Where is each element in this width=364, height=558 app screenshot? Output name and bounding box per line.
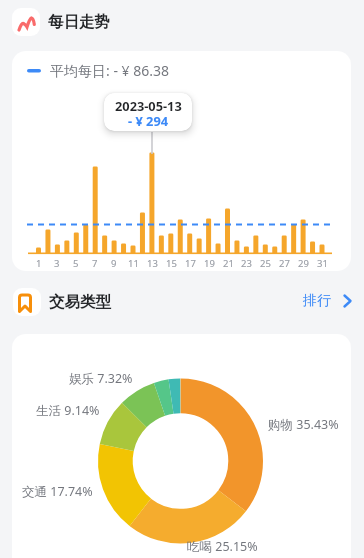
staticText: 每日走势 [48,12,110,32]
staticText: 交易类型 [49,292,111,312]
staticText: 15 [166,257,177,270]
staticText: 17 [185,257,196,270]
staticText: 3 [54,257,60,270]
staticText: 31 [317,257,328,270]
staticText: 生活 9.14% [36,402,100,419]
staticText: 25 [260,257,271,270]
staticText: 29 [298,257,309,270]
staticText: 27 [279,257,290,270]
button[interactable] [12,334,351,558]
staticText: 23 [241,257,252,270]
button[interactable]: 排行 [303,292,353,310]
staticText: 5 [73,257,79,270]
button[interactable] [12,51,351,271]
staticText: - ¥ 294 [128,112,169,129]
staticText: 交通 17.74% [22,483,93,500]
staticText: 购物 35.43% [268,416,339,433]
staticText: 吃喝 25.15% [187,538,258,555]
staticText: 21 [223,257,234,270]
staticText: 7 [92,257,98,270]
staticText: 19 [204,257,215,270]
staticText: 13 [147,257,158,270]
staticText: 2023-05-13 [115,97,182,114]
staticText: 1 [36,257,42,270]
staticText: 11 [128,257,139,270]
staticText: 排行 [303,292,331,310]
staticText: 娱乐 7.32% [69,370,133,387]
staticText: 9 [111,257,117,270]
staticText: 平均每日: - ¥ 86.38 [50,61,169,80]
